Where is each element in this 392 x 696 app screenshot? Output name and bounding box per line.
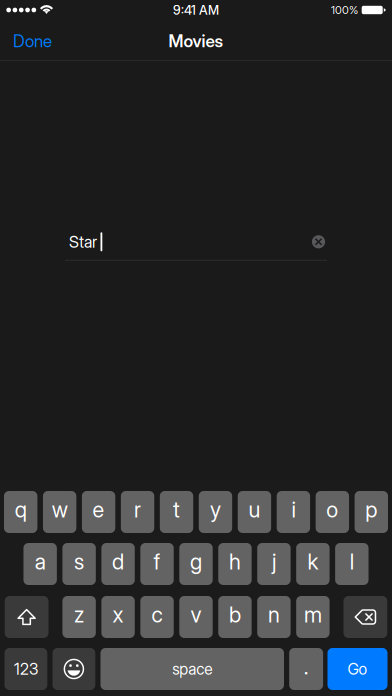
staticText: y [210,497,221,523]
button[interactable]: Go [327,648,387,690]
staticText: a [35,549,46,575]
button[interactable]: z [62,596,96,638]
staticText: m [304,602,322,628]
button[interactable]: i [277,491,310,533]
button[interactable]: f [140,543,174,585]
button[interactable]: j [257,543,291,585]
staticText: 123 [14,659,38,678]
staticText: b [229,602,241,628]
button[interactable]: . [289,648,323,690]
button[interactable]: p [355,491,388,533]
button[interactable]: t [160,491,193,533]
staticText: d [112,549,124,575]
button[interactable]: s [62,543,96,585]
staticText: k [307,549,318,575]
button[interactable]: g [179,543,213,585]
staticText: Movies [168,31,223,51]
button[interactable]: q [4,491,37,533]
button[interactable]: r [121,491,154,533]
button[interactable]: x [101,596,135,638]
button[interactable]: Clear text [310,229,327,255]
button[interactable]: d [101,543,135,585]
button[interactable]: w [43,491,76,533]
button[interactable]: e [82,491,115,533]
staticText: o [326,497,338,523]
button[interactable]: l [335,543,368,585]
button[interactable]: Emoji keyboard [52,648,95,690]
staticText: l [350,549,354,575]
button[interactable]: Delete [343,596,387,638]
button[interactable]: y [199,491,232,533]
button[interactable]: o [316,491,349,533]
staticText: w [52,497,68,523]
button[interactable]: m [296,596,330,638]
staticText: 9:41 AM [173,2,219,18]
button[interactable]: Shift [5,596,48,638]
staticText: i [291,497,295,523]
button[interactable]: k [296,543,330,585]
staticText: c [151,602,162,628]
staticText: 100% [331,3,358,17]
button[interactable]: u [238,491,271,533]
button[interactable]: h [218,543,252,585]
button[interactable]: Done [0,20,64,60]
staticText: v [190,602,201,628]
button[interactable]: a [23,543,57,585]
staticText: Done [13,31,52,51]
staticText: z [74,602,84,628]
staticText: h [229,549,241,575]
button[interactable]: v [179,596,213,638]
button[interactable]: 123 [4,648,47,690]
button[interactable]: b [218,596,252,638]
staticText: g [190,549,202,575]
staticText: n [268,602,280,628]
staticText: r [134,497,141,523]
staticText: s [74,549,84,575]
staticText: Go [347,659,367,678]
staticText: t [173,497,180,523]
button[interactable]: n [257,596,291,638]
staticText: Star [69,232,97,252]
button[interactable]: c [140,596,174,638]
staticText: j [272,549,276,575]
staticText: q [15,497,27,523]
staticText: space [172,659,212,678]
button[interactable]: space [100,648,284,690]
staticText: u [248,497,260,523]
staticText: . [304,654,309,680]
staticText: p [365,497,377,523]
staticText: f [153,549,160,575]
staticText: x [113,602,124,628]
staticText: e [93,497,105,523]
